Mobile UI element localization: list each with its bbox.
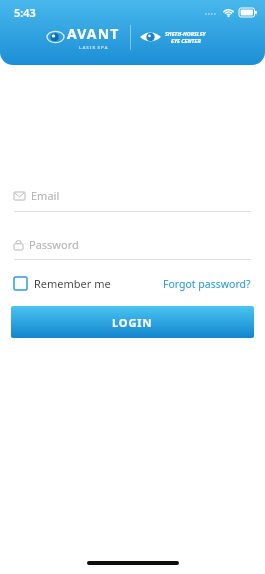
staticText: EYE CENTER (171, 37, 201, 44)
button[interactable]: Remember me (14, 276, 111, 291)
staticText: LOGIN (112, 315, 153, 330)
button[interactable]: Password (14, 237, 251, 260)
button[interactable]: Forgot password? (163, 277, 251, 291)
button[interactable]: LOGIN (11, 306, 254, 338)
staticText: Password (29, 237, 79, 252)
staticText: L A S I K S P A (79, 44, 108, 50)
staticText: Remember me (34, 276, 111, 291)
staticText: SHETH-HORSLEY (165, 30, 206, 37)
staticText: Email (31, 188, 60, 203)
staticText: 5:43 (14, 5, 36, 20)
staticText: Forgot password? (163, 277, 251, 291)
staticText: AVANT (67, 24, 120, 43)
button[interactable]: Email (14, 188, 251, 212)
